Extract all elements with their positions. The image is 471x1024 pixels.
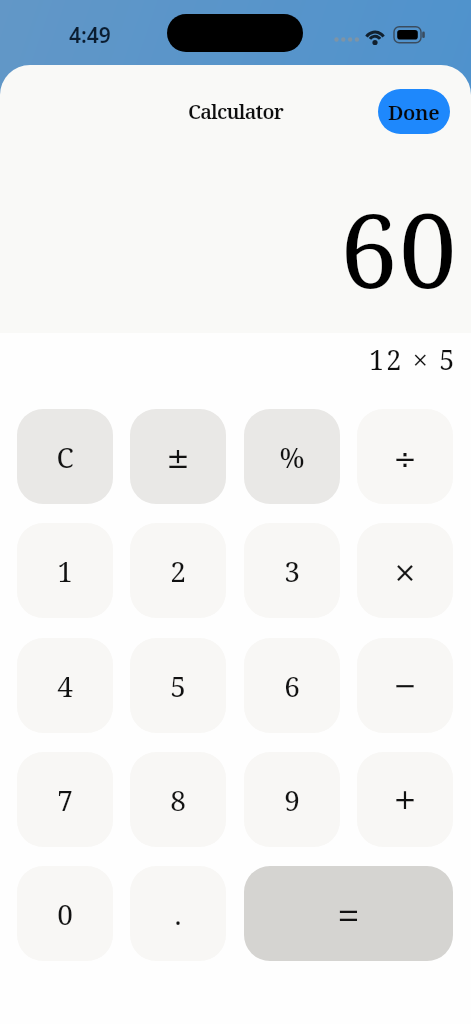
staticText: 3 [284, 552, 300, 590]
staticText: 1 [57, 552, 73, 590]
button[interactable]: × [357, 523, 453, 618]
staticText: 0 [57, 895, 73, 933]
button[interactable]: − [357, 638, 453, 733]
button[interactable]: . [130, 866, 226, 961]
staticText: 5 [170, 667, 186, 705]
button[interactable]: ÷ [357, 409, 453, 504]
button[interactable]: 4 [17, 638, 113, 733]
staticText: Calculator [188, 98, 283, 125]
button[interactable]: % [244, 409, 340, 504]
button[interactable]: 2 [130, 523, 226, 618]
staticText: 9 [284, 781, 300, 819]
button[interactable]: 1 [17, 523, 113, 618]
staticText: + [393, 783, 417, 816]
staticText: 7 [57, 781, 73, 819]
staticText: 2 [170, 552, 186, 590]
staticText: . [174, 895, 182, 933]
staticText: = [337, 887, 360, 941]
button[interactable]: 5 [130, 638, 226, 733]
button[interactable]: 7 [17, 752, 113, 847]
staticText: 60 [340, 178, 459, 318]
button[interactable]: 9 [244, 752, 340, 847]
button[interactable]: 3 [244, 523, 340, 618]
staticText: 8 [170, 781, 186, 819]
staticText: 4 [57, 667, 73, 705]
button[interactable]: 6 [244, 638, 340, 733]
staticText: 6 [284, 667, 300, 705]
staticText: × [393, 556, 417, 589]
staticText: % [279, 438, 305, 476]
button[interactable]: + [357, 752, 453, 847]
button[interactable]: C [17, 409, 113, 504]
staticText: ± [166, 442, 190, 475]
button[interactable]: 8 [130, 752, 226, 847]
staticText: 12 × 5 [369, 341, 457, 378]
staticText: C [56, 438, 74, 476]
staticText: 4:49 [69, 21, 111, 50]
staticText: − [393, 669, 417, 702]
button[interactable]: ± [130, 409, 226, 504]
button[interactable]: Done [378, 89, 450, 134]
button[interactable]: = [244, 866, 453, 961]
button[interactable]: 0 [17, 866, 113, 961]
staticText: Done [388, 98, 440, 126]
staticText: ÷ [393, 443, 417, 476]
